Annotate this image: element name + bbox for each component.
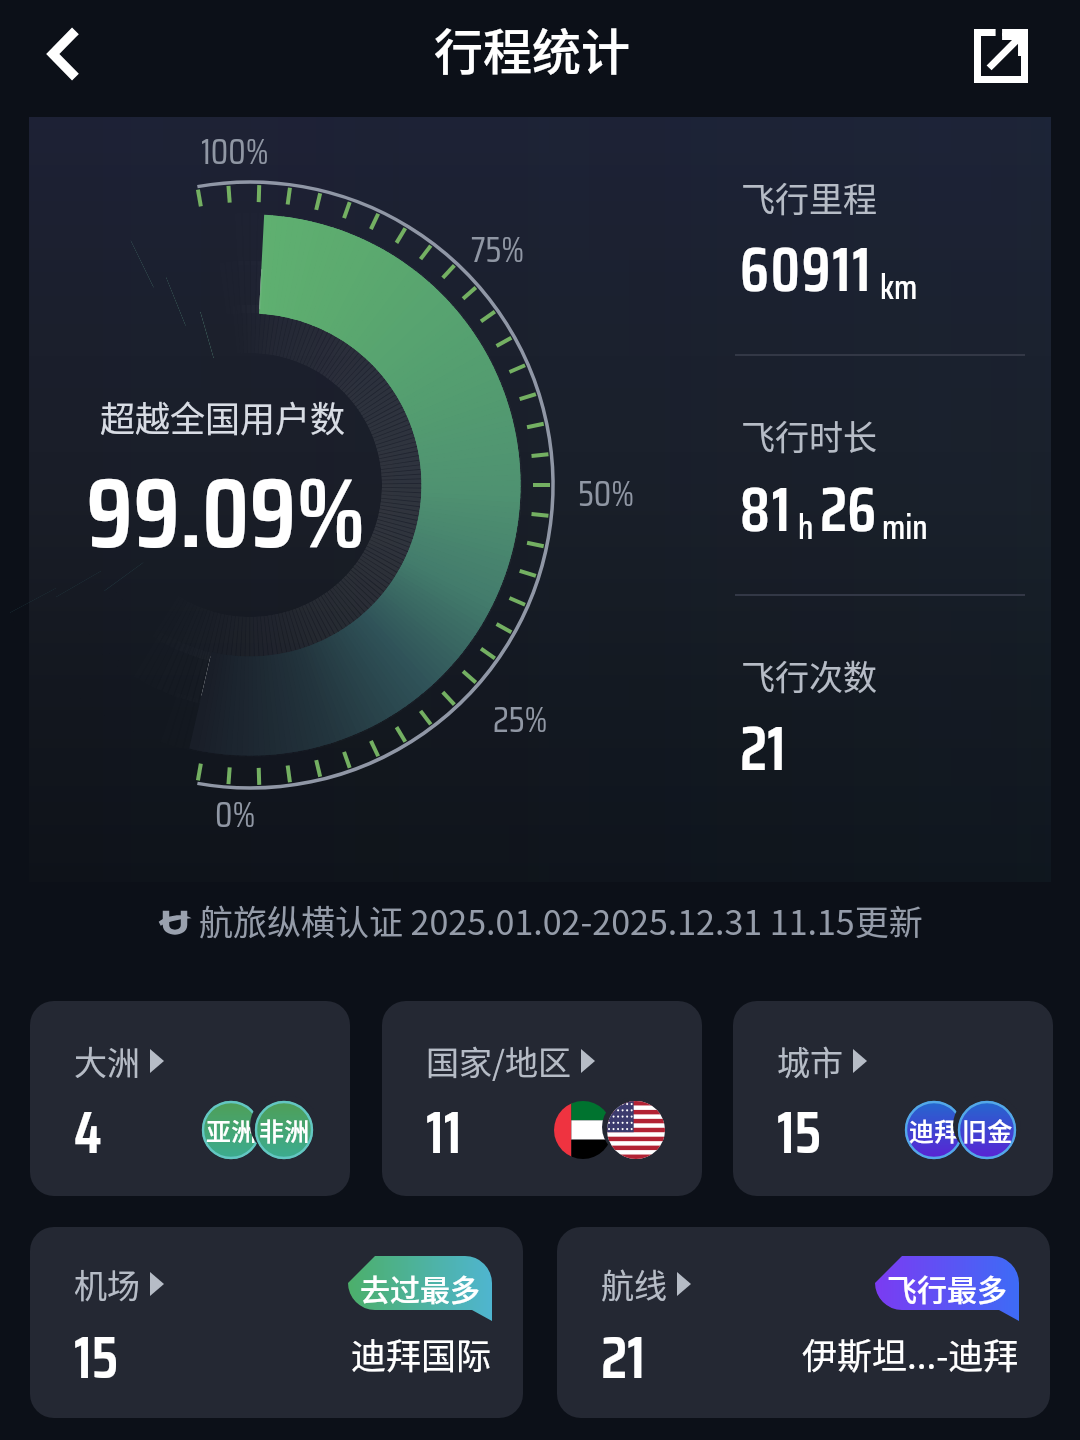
staticText: 25% [493, 691, 548, 748]
staticText: 60911 [740, 222, 873, 318]
staticText: 21 [740, 701, 786, 797]
staticText: 旧金 [962, 1112, 1013, 1148]
button[interactable]: 城市 [733, 1001, 1053, 1196]
staticText: 26 [820, 462, 877, 558]
button[interactable]: 国家/地区 [382, 1001, 702, 1196]
staticText: 99.09% [86, 435, 366, 591]
button[interactable]: 机场 [30, 1227, 523, 1418]
staticText: 75% [471, 221, 525, 278]
button[interactable]: 大洲 [30, 1001, 350, 1196]
staticText: 机场 [74, 1260, 140, 1308]
staticText: 去过最多 [360, 1266, 480, 1309]
staticText: 非洲 [259, 1112, 310, 1148]
staticText: 飞行最多 [887, 1266, 1007, 1309]
button[interactable]: Back [30, 22, 94, 86]
staticText: 飞行里程 [741, 173, 877, 222]
staticText: 50% [578, 465, 635, 522]
staticText: min [882, 500, 928, 554]
staticText: 亚洲 [206, 1112, 257, 1148]
staticText: 行程统计 [434, 13, 631, 84]
button[interactable]: 航线 [557, 1227, 1050, 1418]
staticText: 城市 [777, 1037, 843, 1085]
staticText: 飞行次数 [741, 651, 877, 700]
staticText: 0% [215, 786, 256, 843]
staticText: 飞行时长 [741, 411, 877, 460]
staticText: h [798, 500, 814, 554]
staticText: 21 [601, 1311, 645, 1404]
staticText: 15 [777, 1086, 822, 1179]
staticText: 迪拜 [909, 1112, 960, 1148]
staticText: 航旅纵横认证 2025.01.02-2025.12.31 11.15更新 [199, 896, 923, 945]
staticText: 超越全国用户数 [100, 391, 346, 442]
staticText: 11 [426, 1086, 462, 1179]
staticText: 航线 [601, 1260, 667, 1308]
staticText: 81 [740, 462, 792, 558]
staticText: 大洲 [74, 1037, 140, 1085]
button[interactable]: Share [966, 21, 1036, 91]
staticText: 100% [201, 123, 269, 180]
staticText: 伊斯坦...-迪拜 [802, 1328, 1019, 1379]
staticText: km [880, 260, 918, 314]
staticText: 15 [74, 1311, 119, 1404]
staticText: 迪拜国际 [351, 1328, 492, 1379]
staticText: 国家/地区 [426, 1037, 571, 1085]
staticText: 4 [74, 1086, 102, 1179]
